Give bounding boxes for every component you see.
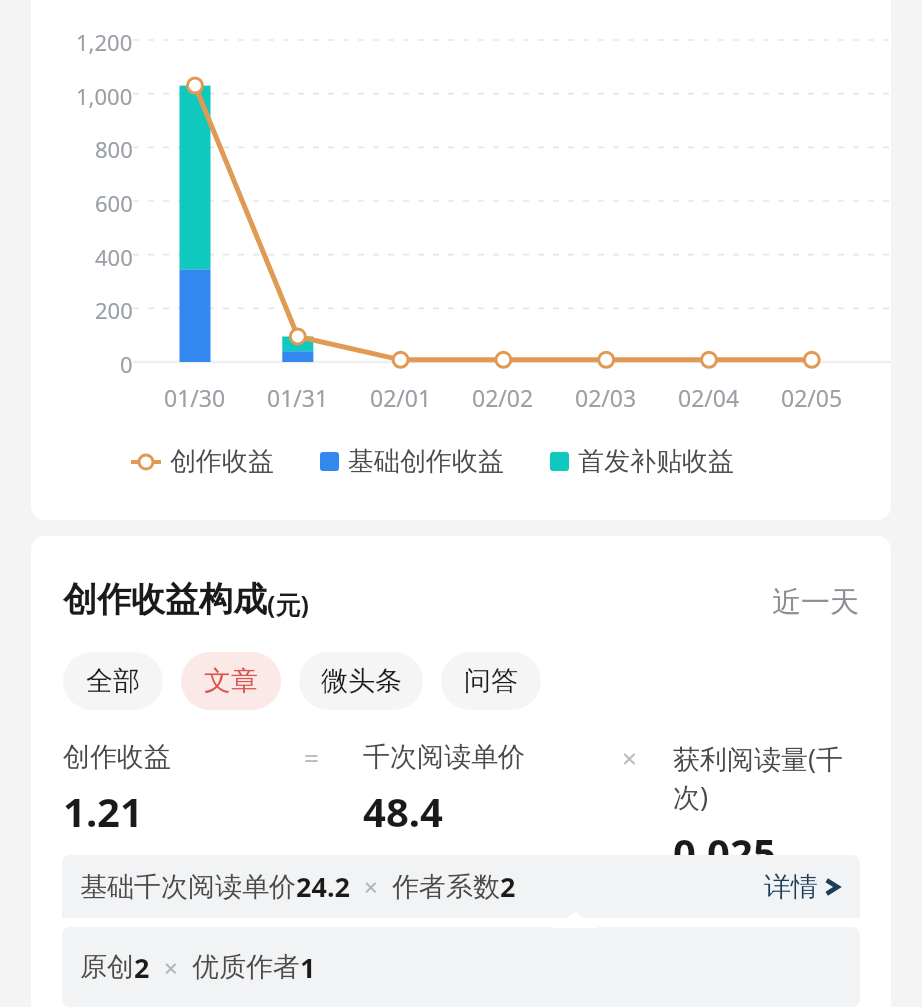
- staticText: ×: [364, 870, 378, 903]
- staticText: 01/31: [267, 382, 329, 413]
- staticText: 微头条: [321, 664, 402, 698]
- staticText: 02/03: [575, 382, 637, 413]
- button[interactable]: 基础创作收益: [320, 445, 504, 478]
- staticText: =: [304, 740, 319, 775]
- staticText: 02/04: [678, 382, 740, 413]
- button[interactable]: 微头条: [299, 652, 423, 710]
- staticText: 0.025: [673, 825, 776, 879]
- staticText: 0: [120, 349, 133, 379]
- staticText: 600: [95, 188, 133, 218]
- staticText: 24.2: [296, 868, 350, 905]
- staticText: 基础千次阅读单价: [80, 870, 296, 904]
- button[interactable]: 获利阅读量(千次): [673, 740, 867, 879]
- staticText: 2: [134, 949, 150, 986]
- staticText: 问答: [464, 664, 518, 698]
- staticText: 400: [95, 242, 133, 272]
- staticText: 1: [300, 949, 316, 986]
- staticText: 01/30: [164, 382, 226, 413]
- button[interactable]: 文章: [181, 652, 281, 710]
- staticText: ×: [164, 951, 178, 984]
- button[interactable]: 原创: [62, 927, 860, 1007]
- staticText: 800: [95, 134, 133, 164]
- staticText: 02/05: [781, 382, 843, 413]
- staticText: 48.4: [363, 784, 443, 838]
- button[interactable]: 全部: [63, 652, 163, 710]
- staticText: 1,200: [76, 27, 133, 57]
- staticText: 原创: [80, 950, 134, 984]
- staticText: 2: [500, 868, 516, 905]
- staticText: 1.21: [63, 784, 143, 838]
- button[interactable]: 首发补贴收益: [550, 445, 734, 478]
- staticText: 获利阅读量(千次): [673, 740, 867, 815]
- staticText: 文章: [204, 664, 258, 698]
- button[interactable]: 创作收益: [63, 740, 259, 838]
- staticText: 创作收益: [63, 740, 171, 774]
- staticText: 全部: [86, 664, 140, 698]
- staticText: 创作收益: [170, 445, 274, 478]
- staticText: 02/01: [370, 382, 432, 413]
- button[interactable]: 近一天: [772, 584, 859, 621]
- staticText: 千次阅读单价: [363, 740, 525, 774]
- staticText: 创作收益构成: [63, 578, 267, 621]
- button[interactable]: 创作收益: [131, 445, 274, 478]
- button[interactable]: 基础千次阅读单价: [62, 855, 860, 918]
- staticText: 近一天: [772, 584, 859, 621]
- staticText: 02/02: [472, 382, 534, 413]
- staticText: 首发补贴收益: [578, 445, 734, 478]
- staticText: 优质作者: [192, 950, 300, 984]
- staticText: 作者系数: [392, 870, 500, 904]
- staticText: ×: [622, 740, 637, 775]
- staticText: 详情: [764, 870, 818, 904]
- staticText: 200: [95, 295, 133, 325]
- button[interactable]: 千次阅读单价: [363, 740, 585, 838]
- staticText: 基础创作收益: [348, 445, 504, 478]
- staticText: (元): [267, 587, 309, 621]
- staticText: 1,000: [76, 81, 133, 111]
- button[interactable]: 问答: [441, 652, 541, 710]
